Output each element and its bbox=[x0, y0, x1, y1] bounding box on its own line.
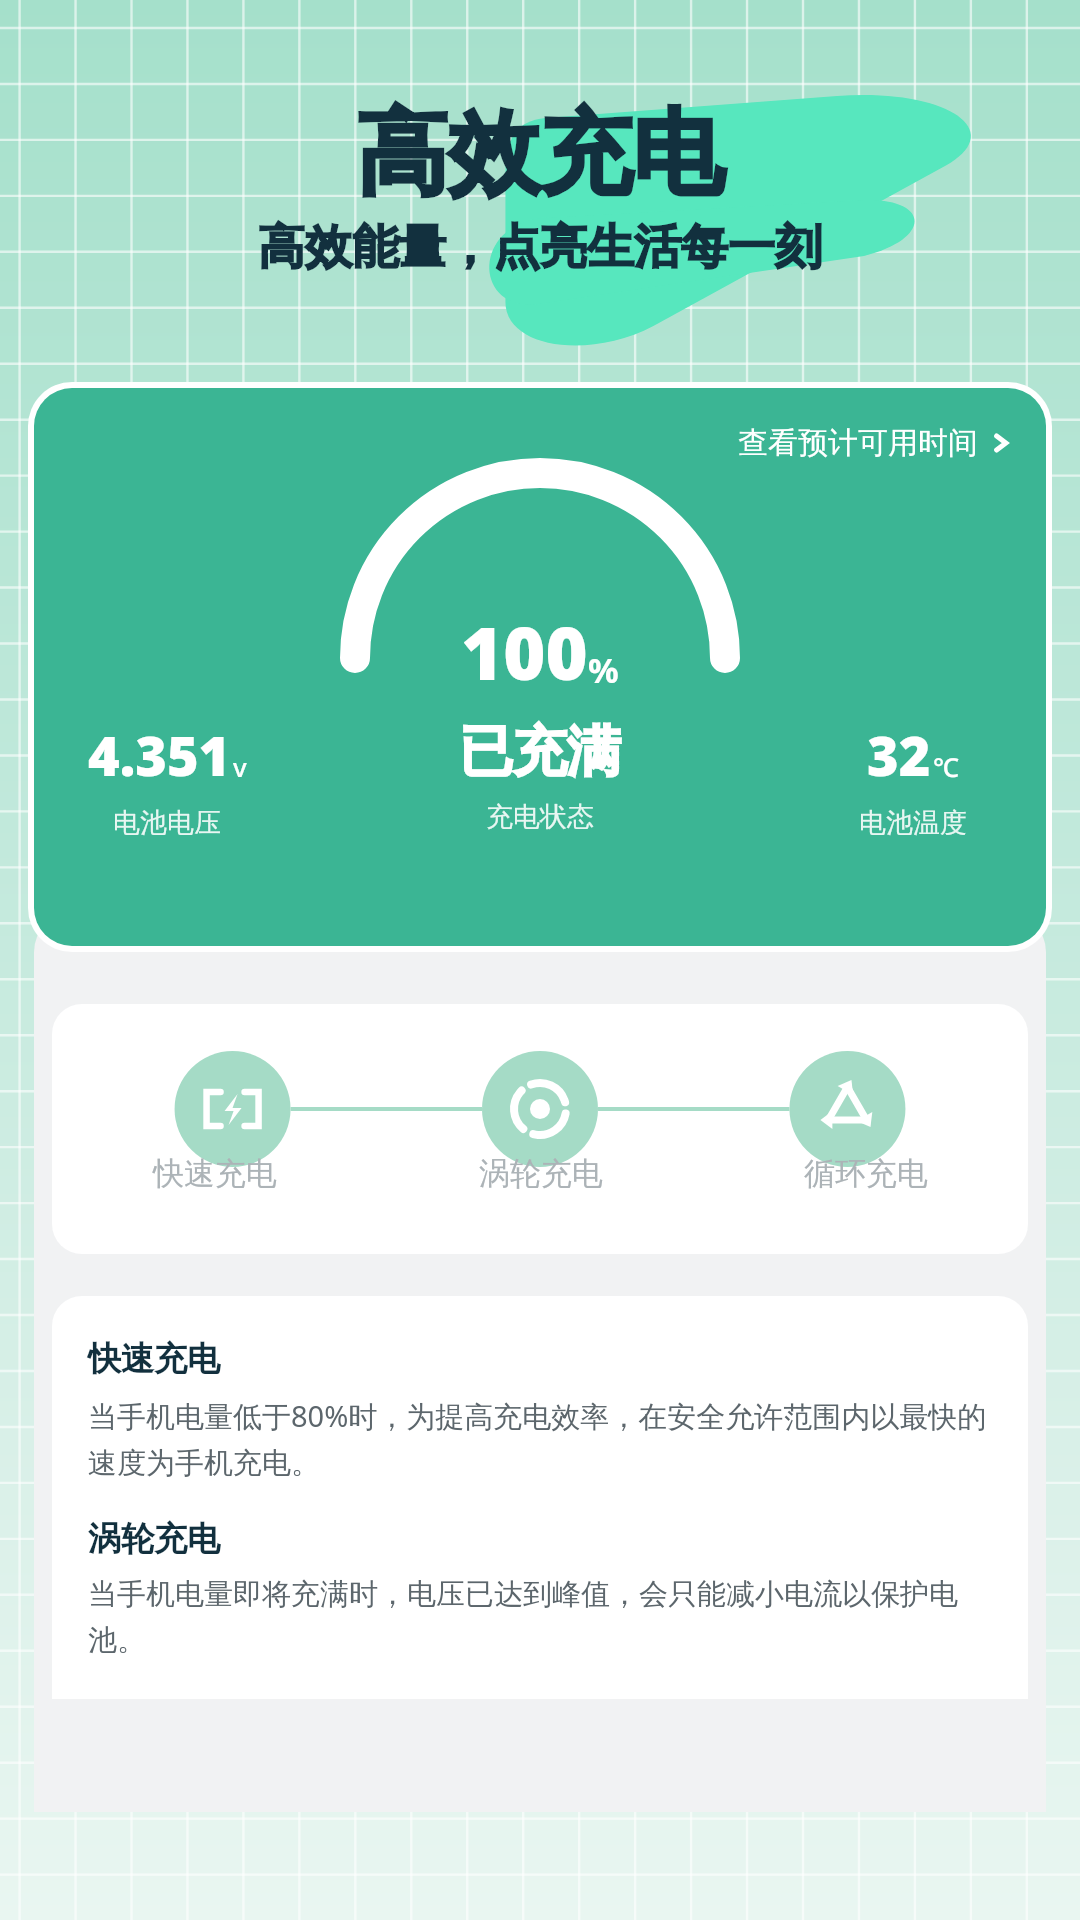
staticText: 涡轮充电 bbox=[88, 1518, 220, 1560]
staticText: 电池电压 bbox=[113, 806, 221, 840]
staticText: 循环充电 bbox=[804, 1154, 928, 1193]
staticText: 涡轮充电 bbox=[479, 1154, 603, 1193]
button[interactable]: 查看预计可用时间 bbox=[730, 418, 1020, 468]
staticText: 4.351 bbox=[88, 718, 231, 792]
staticText: 快速充电 bbox=[88, 1338, 220, 1380]
button[interactable]: 循环充电 bbox=[703, 1154, 1028, 1193]
staticText: % bbox=[588, 647, 619, 693]
staticText: 高效能量，点亮生活每一刻 bbox=[258, 218, 822, 277]
staticText: 32 bbox=[867, 718, 931, 792]
staticText: 当手机电量即将充满时，电压已达到峰值，会只能减小电流以保护电池。 bbox=[88, 1576, 992, 1659]
staticText: ℃ bbox=[933, 749, 959, 784]
staticText: 已充满 bbox=[459, 718, 621, 786]
staticText: 100 bbox=[461, 603, 588, 701]
staticText: 充电状态 bbox=[486, 800, 594, 834]
staticText: 高效充电 bbox=[356, 96, 724, 212]
staticText: 当手机电量低于80%时，为提高充电效率，在安全允许范围内以最快的速度为手机充电。 bbox=[88, 1396, 992, 1482]
staticText: 快速充电 bbox=[153, 1154, 277, 1193]
button[interactable]: 涡轮充电 bbox=[378, 1154, 703, 1193]
button[interactable]: 快速充电 bbox=[52, 1154, 378, 1193]
staticText: 查看预计可用时间 bbox=[738, 424, 978, 462]
staticText: v bbox=[233, 749, 247, 784]
staticText: 电池温度 bbox=[859, 806, 967, 840]
